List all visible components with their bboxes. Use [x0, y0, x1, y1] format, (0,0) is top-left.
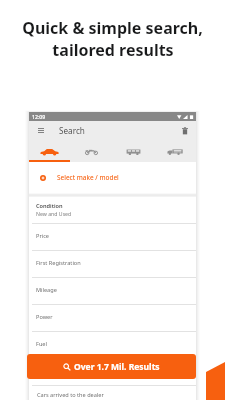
- button[interactable]: Delete search: [178, 121, 192, 140]
- staticText: Condition: [36, 202, 63, 210]
- staticText: First Registration: [36, 259, 81, 267]
- staticText: Over 1.7 Mil. Results: [74, 361, 160, 373]
- button[interactable]: Campers: [112, 140, 154, 162]
- staticText: Quick & simple search,: [22, 17, 203, 39]
- staticText: Power: [36, 313, 53, 321]
- staticText: Search: [59, 125, 85, 136]
- staticText: Select make / model: [57, 173, 119, 182]
- button[interactable]: Over 1.7 Mil. Results: [27, 354, 196, 379]
- button[interactable]: Country: [29, 359, 196, 386]
- button[interactable]: Select make / model: [29, 162, 196, 193]
- button[interactable]: Power: [29, 305, 196, 332]
- staticText: Cars arrived to the dealer: [37, 391, 104, 399]
- button[interactable]: Trucks: [154, 140, 196, 162]
- staticText: Fuel: [36, 340, 47, 348]
- button[interactable]: Price: [29, 224, 196, 251]
- staticText: Mileage: [36, 286, 57, 294]
- button[interactable]: Condition: [29, 197, 196, 224]
- staticText: Price: [36, 232, 49, 240]
- button[interactable]: Cars: [29, 140, 70, 162]
- button[interactable]: Motorcycles: [70, 140, 112, 162]
- staticText: tailored results: [52, 39, 174, 61]
- staticText: New and Used: [36, 210, 72, 217]
- button[interactable]: First Registration: [29, 251, 196, 278]
- staticText: 12:09: [32, 113, 46, 120]
- button[interactable]: Menu: [34, 121, 48, 140]
- button[interactable]: Mileage: [29, 278, 196, 305]
- button[interactable]: Fuel: [29, 332, 196, 359]
